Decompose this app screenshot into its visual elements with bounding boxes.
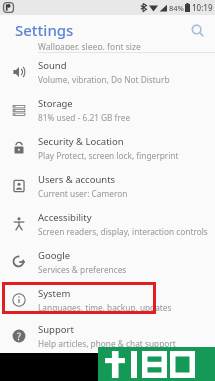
staticText: Volume, vibration, Do Not Disturb xyxy=(38,74,170,85)
staticText: Support xyxy=(38,323,74,336)
button[interactable]: Users & accounts xyxy=(0,167,215,205)
staticText: Sound xyxy=(38,59,67,72)
staticText: Services & preferences xyxy=(38,264,127,275)
staticText: Security & Location xyxy=(38,135,124,148)
staticText: Settings xyxy=(15,20,74,40)
button[interactable]: System xyxy=(0,281,215,319)
button[interactable]: Back xyxy=(38,353,215,381)
button[interactable]: Storage xyxy=(0,91,215,129)
staticText: Help articles, phone & chat support xyxy=(38,338,176,349)
staticText: Current user: Cameron xyxy=(38,188,128,199)
staticText: Users & accounts xyxy=(38,173,116,186)
staticText: Google xyxy=(38,249,71,262)
staticText: Screen readers, display, interaction con… xyxy=(38,226,208,237)
staticText: 10:19 xyxy=(192,2,213,13)
staticText: 84% xyxy=(169,3,184,13)
staticText: 81% used - 6.21 GB free xyxy=(38,112,131,123)
button[interactable]: Support xyxy=(0,319,215,353)
button[interactable]: Google xyxy=(0,243,215,281)
button[interactable]: Accessibility xyxy=(0,205,215,243)
button[interactable]: Search settings xyxy=(185,18,209,42)
staticText: Play Protect, screen lock, fingerprint xyxy=(38,150,179,161)
staticText: Languages, time, backup, updates xyxy=(38,302,172,313)
button[interactable]: Security & Location xyxy=(0,129,215,167)
staticText: Storage xyxy=(38,97,73,110)
staticText: System xyxy=(38,287,71,300)
staticText: Accessibility xyxy=(38,211,92,224)
staticText: Wallpaper, sleep, font size xyxy=(38,41,141,50)
button[interactable]: Sound xyxy=(0,53,215,91)
